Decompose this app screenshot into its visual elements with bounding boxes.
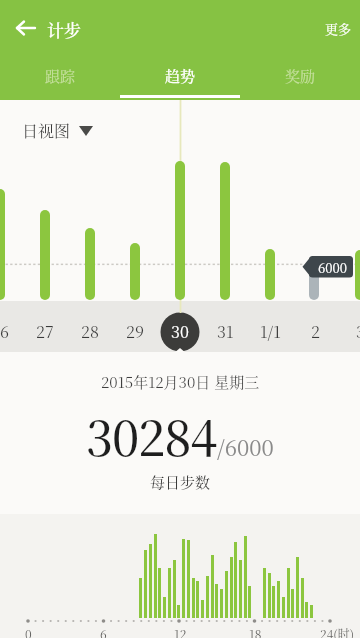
button[interactable]: 趋势 — [120, 56, 240, 100]
staticText: 18 — [249, 625, 262, 638]
staticText: 29 — [126, 320, 144, 343]
staticText: 0 — [25, 625, 32, 638]
button[interactable]: 29 — [113, 306, 157, 357]
staticText: 24(时) — [320, 625, 355, 638]
button[interactable]: 更多 — [316, 14, 360, 42]
button[interactable]: 28 — [68, 306, 112, 357]
staticText: 每日步数 — [150, 471, 211, 493]
button[interactable]: 跟踪 — [0, 56, 120, 100]
staticText: 30284 — [86, 401, 217, 470]
staticText: 2 — [311, 320, 320, 343]
button[interactable]: 奖励 — [240, 56, 360, 100]
staticText: 26 — [0, 320, 9, 343]
staticText: 跟踪 — [45, 65, 76, 87]
staticText: 趋势 — [165, 65, 196, 87]
staticText: 日视图 — [22, 119, 71, 142]
staticText: 奖励 — [285, 65, 316, 87]
button[interactable]: 3 — [338, 306, 360, 357]
button[interactable]: 26 — [0, 306, 22, 357]
staticText: 12 — [174, 625, 187, 638]
button[interactable]: 1/1 — [248, 306, 292, 357]
button[interactable]: 27 — [23, 306, 67, 357]
staticText: 28 — [81, 320, 99, 343]
staticText: 6000 — [318, 258, 347, 277]
staticText: 1/1 — [260, 320, 281, 343]
staticText: 2015年12月30日 星期三 — [101, 371, 260, 393]
staticText: 计步 — [47, 17, 81, 41]
button[interactable]: 30 — [158, 306, 202, 357]
staticText: 3 — [356, 320, 360, 343]
staticText: /6000 — [217, 431, 274, 463]
button[interactable]: 日视图 — [22, 119, 93, 142]
button[interactable]: 31 — [203, 306, 247, 357]
staticText: 31 — [217, 320, 234, 343]
staticText: 30 — [171, 320, 189, 343]
button[interactable] — [6, 14, 46, 42]
staticText: 更多 — [325, 19, 352, 38]
staticText: 27 — [36, 320, 54, 343]
staticText: 6 — [100, 625, 107, 638]
button[interactable]: 2 — [293, 306, 337, 357]
